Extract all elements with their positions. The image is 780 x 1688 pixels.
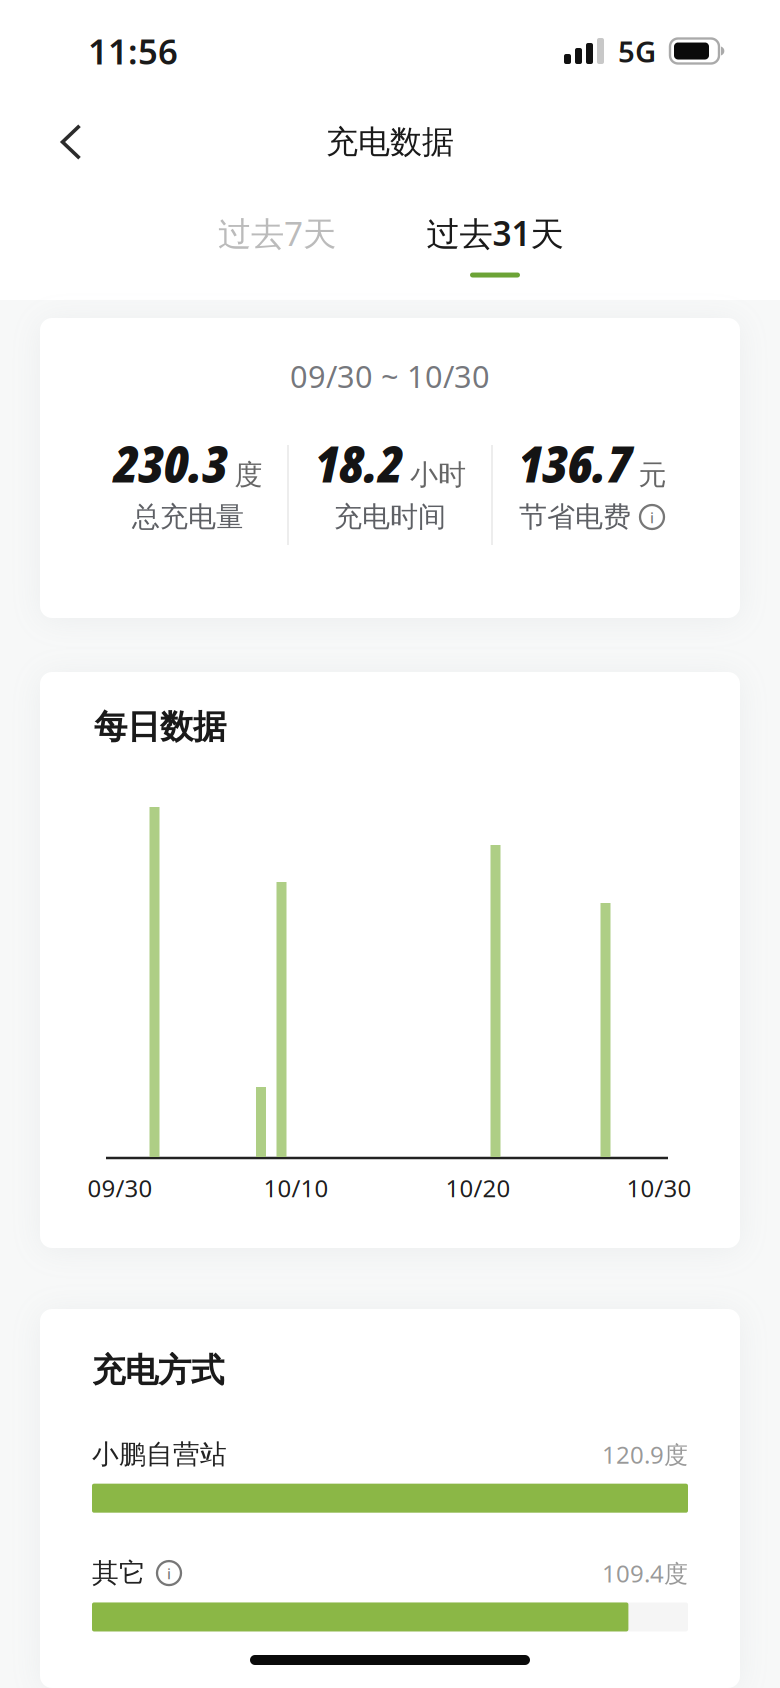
staticText: 5G — [618, 31, 656, 70]
staticText: 充电数据 — [326, 122, 454, 162]
staticText: 230.3 — [113, 429, 227, 497]
staticText: 充电时间 — [334, 500, 446, 534]
staticText: 过去7天 — [218, 211, 336, 255]
staticText: 小鹏自营站 — [92, 1438, 227, 1471]
staticText: 09/30 ~ 10/30 — [290, 356, 490, 396]
staticText: 18.2 — [314, 429, 403, 497]
staticText: 其它 — [92, 1557, 146, 1589]
staticText: 充电方式 — [92, 1350, 224, 1391]
button[interactable]: 过去7天 — [198, 197, 356, 269]
staticText: 度 — [234, 458, 262, 492]
staticText: 10/20 — [445, 1172, 510, 1204]
staticText: 11:56 — [88, 28, 178, 74]
staticText: 120.9度 — [602, 1438, 688, 1470]
staticText: 每日数据 — [94, 706, 226, 747]
button[interactable]: Back — [8, 97, 111, 187]
staticText: 过去31天 — [426, 211, 563, 255]
button[interactable]: Info — [156, 1560, 182, 1586]
staticText: 总充电量 — [132, 500, 244, 534]
staticText: 10/30 — [626, 1172, 691, 1204]
staticText: 元 — [638, 458, 666, 492]
button[interactable]: Info — [639, 504, 665, 530]
staticText: 109.4度 — [602, 1557, 688, 1589]
staticText: 节省电费 — [519, 500, 631, 534]
staticText: 小时 — [410, 458, 466, 492]
staticText: 09/30 — [87, 1172, 152, 1204]
staticText: 10/10 — [263, 1172, 328, 1204]
staticText: i — [167, 1564, 171, 1583]
staticText: i — [650, 508, 654, 527]
button[interactable]: 过去31天 — [406, 197, 583, 269]
staticText: 136.7 — [517, 429, 631, 497]
